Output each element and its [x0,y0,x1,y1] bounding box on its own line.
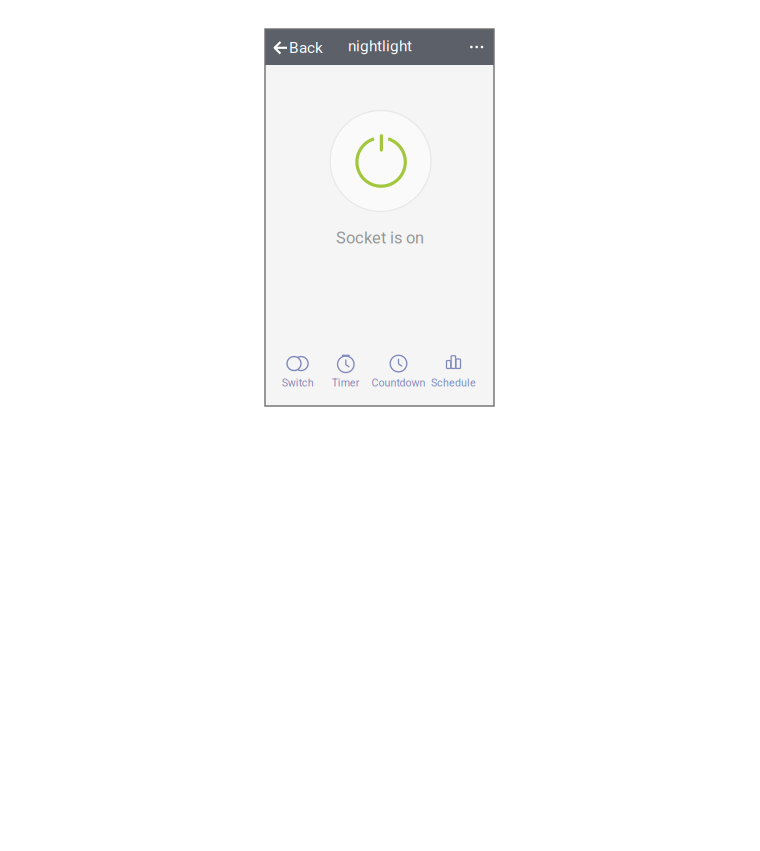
button[interactable]: Schedule [428,352,479,392]
button[interactable]: Timer [329,352,363,392]
staticText: Switch [282,376,314,389]
button[interactable]: More options [461,35,492,59]
staticText: nightlight [348,37,412,55]
button[interactable]: Power [329,109,433,213]
staticText: Countdown [371,376,425,389]
button[interactable]: Switch [279,352,317,392]
button[interactable]: Back [266,31,329,65]
button[interactable]: Countdown [368,352,428,392]
staticText: Schedule [431,376,476,389]
staticText: Timer [332,376,360,389]
staticText: Socket is on [336,228,424,248]
staticText: Back [289,39,323,57]
